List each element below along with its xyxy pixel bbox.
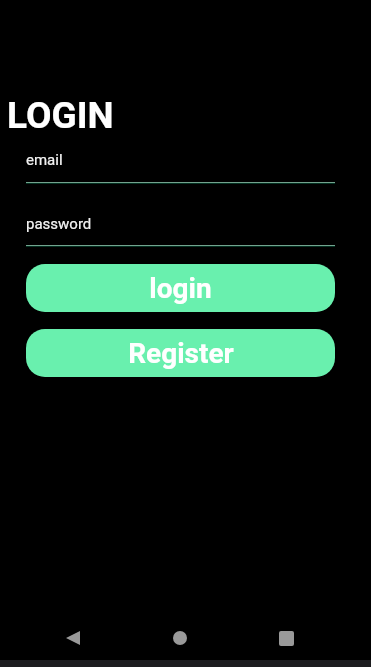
- button[interactable]: Home: [156, 614, 204, 662]
- button[interactable]: password: [26, 215, 335, 247]
- staticText: Register: [128, 337, 234, 370]
- button[interactable]: Register: [26, 329, 335, 377]
- button[interactable]: Recent apps: [262, 614, 310, 662]
- staticText: password: [26, 215, 92, 233]
- staticText: login: [149, 272, 212, 305]
- staticText: email: [26, 151, 63, 169]
- button[interactable]: login: [26, 264, 335, 312]
- staticText: LOGIN: [7, 94, 114, 137]
- button[interactable]: Back: [49, 614, 97, 662]
- button[interactable]: email: [26, 151, 335, 184]
